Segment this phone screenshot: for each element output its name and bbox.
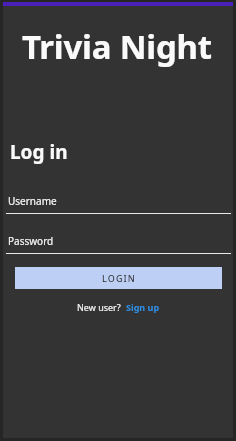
button[interactable]: Username <box>4 194 232 214</box>
staticText: Log in <box>10 139 68 165</box>
button[interactable]: Sign up <box>126 301 160 313</box>
button[interactable]: LOGIN <box>15 267 222 289</box>
staticText: Trivia Night <box>22 24 212 69</box>
staticText: New user? <box>77 301 121 313</box>
staticText: Username <box>8 194 57 208</box>
staticText: Password <box>8 234 54 248</box>
staticText: LOGIN <box>102 272 136 284</box>
staticText: Sign up <box>126 301 160 313</box>
button[interactable]: Password <box>4 234 232 254</box>
